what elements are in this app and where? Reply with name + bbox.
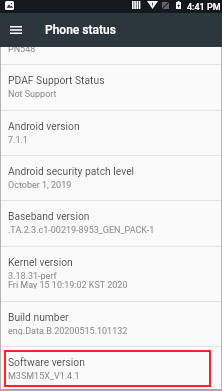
button[interactable]: Open navigation menu <box>6 20 26 40</box>
staticText: PN548 <box>8 44 36 55</box>
staticText: Software version <box>8 356 85 368</box>
staticText: Baseband version <box>8 210 90 222</box>
button[interactable]: Android version <box>0 111 222 155</box>
button[interactable]: Build number <box>0 302 222 346</box>
button[interactable]: Software version <box>0 347 222 391</box>
staticText: Android version <box>8 120 80 132</box>
staticText: Build number <box>8 311 69 323</box>
staticText: Fri May 15 10:19:02 KST 2020 <box>8 280 128 289</box>
staticText: Kernel version <box>8 256 73 268</box>
staticText: M3SM15X_V1.4.1 <box>8 371 80 380</box>
staticText: Android security patch level <box>8 165 135 177</box>
staticText: Not Support <box>8 89 57 98</box>
staticText: 7.1.1 <box>8 135 28 144</box>
staticText: PDAF Support Status <box>8 74 105 86</box>
staticText: October 1, 2019 <box>8 180 72 189</box>
staticText: .TA.2.3.c1-00219-8953_GEN_PACK-1 <box>8 225 155 234</box>
button[interactable]: Android security patch level <box>0 156 222 200</box>
button[interactable]: Kernel version <box>0 247 222 301</box>
button[interactable]: PDAF Support Status <box>0 65 222 110</box>
staticText: 3.18.31-perf <box>8 271 57 280</box>
staticText: Phone status <box>45 23 116 37</box>
staticText: eng.Data.B.20200515.101132 <box>8 326 128 335</box>
staticText: 4:41 PM <box>187 2 221 13</box>
button[interactable]: Baseband version <box>0 201 222 246</box>
